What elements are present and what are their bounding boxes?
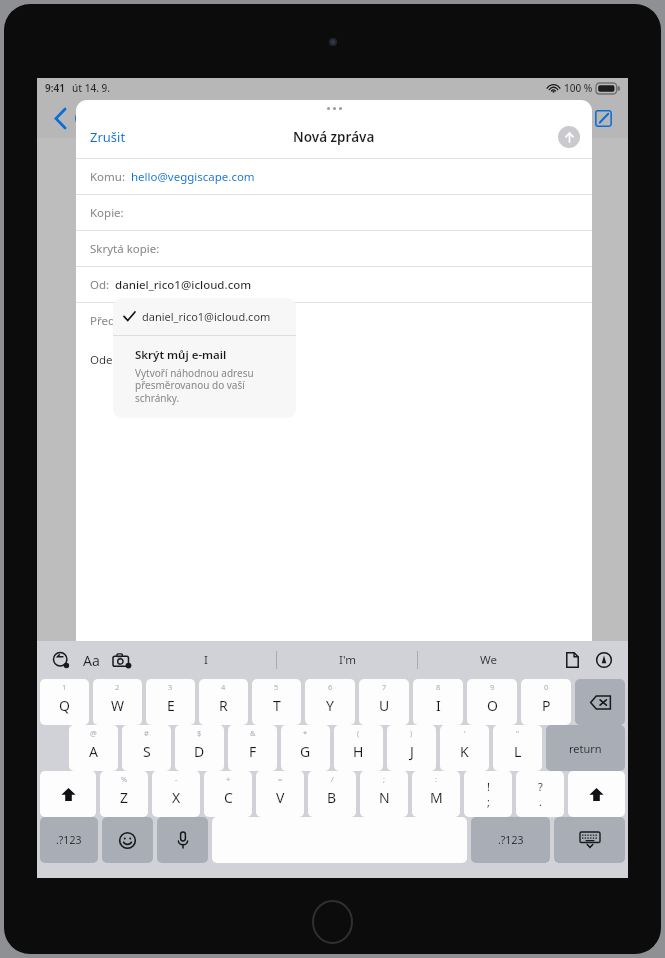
- button[interactable]: Dictation: [157, 817, 208, 863]
- button[interactable]: Komu:: [76, 159, 592, 194]
- button[interactable]: !: [464, 771, 512, 817]
- staticText: ': [464, 728, 466, 738]
- button[interactable]: #: [122, 725, 171, 771]
- staticText: ;: [383, 774, 386, 784]
- button[interactable]: Attach document: [559, 647, 585, 673]
- staticText: 1: [62, 682, 67, 692]
- button[interactable]: Hide keyboard: [554, 817, 625, 863]
- staticText: @: [90, 728, 97, 738]
- button[interactable]: @: [69, 725, 118, 771]
- button[interactable]: Move to folder: [546, 103, 576, 133]
- button[interactable]: 1: [40, 679, 89, 725]
- staticText: ): [410, 728, 413, 738]
- button[interactable]: ': [440, 725, 489, 771]
- staticText: 100 %: [564, 81, 593, 95]
- button[interactable]: /: [308, 771, 356, 817]
- button[interactable]: 4: [199, 679, 248, 725]
- button[interactable]: daniel_rico1@icloud.com: [113, 298, 296, 335]
- button[interactable]: Shift: [568, 771, 625, 817]
- button[interactable]: ): [387, 725, 436, 771]
- staticText: Od:: [90, 277, 110, 293]
- button[interactable]: Od:: [76, 267, 592, 302]
- button[interactable]: I: [135, 641, 277, 679]
- button[interactable]: Zrušit: [84, 124, 132, 150]
- staticText: .: [539, 794, 542, 809]
- button[interactable]: Shift: [40, 771, 96, 817]
- staticText: Zrušit: [90, 128, 126, 146]
- button[interactable]: Markup: [591, 647, 617, 673]
- button[interactable]: Skrýt můj e-mail: [113, 336, 296, 418]
- staticText: 6: [328, 682, 333, 692]
- staticText: Aa: [83, 651, 100, 670]
- staticText: 5: [274, 682, 279, 692]
- staticText: X: [172, 788, 181, 807]
- staticText: M: [430, 788, 443, 807]
- button[interactable]: ": [493, 725, 542, 771]
- button[interactable]: .?123: [40, 817, 98, 863]
- button[interactable]: Send: [558, 126, 580, 148]
- button[interactable]: 0: [521, 679, 571, 725]
- button[interactable]: 6: [305, 679, 355, 725]
- button[interactable]: :: [412, 771, 460, 817]
- button[interactable]: Camera: [109, 647, 135, 673]
- staticText: W: [111, 696, 125, 715]
- button[interactable]: &: [228, 725, 277, 771]
- staticText: We: [480, 652, 497, 668]
- button[interactable]: Backspace: [575, 679, 625, 725]
- button[interactable]: Kopie:: [76, 195, 592, 230]
- button[interactable]: 7: [359, 679, 409, 725]
- button[interactable]: 2: [93, 679, 142, 725]
- staticText: D: [194, 742, 205, 761]
- button[interactable]: 5: [252, 679, 301, 725]
- button[interactable]: (: [334, 725, 383, 771]
- button[interactable]: 8: [413, 679, 463, 725]
- button[interactable]: Předmět:: [76, 303, 592, 338]
- staticText: Odesláno z iPadu: [90, 352, 184, 368]
- staticText: daniel_rico1@icloud.com: [142, 309, 271, 324]
- staticText: C: [224, 788, 233, 807]
- button[interactable]: $: [175, 725, 224, 771]
- staticText: 7: [382, 682, 387, 692]
- staticText: I'm: [339, 652, 356, 668]
- button[interactable]: I'm: [277, 641, 418, 679]
- staticText: G: [300, 742, 311, 761]
- button[interactable]: 9: [467, 679, 517, 725]
- button[interactable]: Compose: [588, 103, 618, 133]
- button[interactable]: Aa: [80, 648, 103, 673]
- staticText: S: [143, 742, 151, 761]
- staticText: R: [219, 696, 228, 715]
- button[interactable]: %: [100, 771, 148, 817]
- staticText: A: [89, 742, 98, 761]
- button[interactable]: .?123: [471, 817, 550, 863]
- staticText: *: [303, 728, 308, 738]
- staticText: Skrytá kopie:: [90, 241, 160, 257]
- button[interactable]: return: [546, 725, 625, 771]
- button[interactable]: =: [256, 771, 304, 817]
- button[interactable]: Undo: [48, 647, 74, 673]
- button[interactable]: -: [152, 771, 200, 817]
- button[interactable]: Emoji: [102, 817, 153, 863]
- staticText: ": [516, 728, 520, 738]
- staticText: (: [357, 728, 360, 738]
- staticText: &: [250, 728, 256, 738]
- button[interactable]: +: [204, 771, 252, 817]
- staticText: return: [569, 741, 602, 756]
- staticText: :: [435, 774, 438, 784]
- button[interactable]: Skrytá kopie:: [76, 231, 592, 266]
- button[interactable]: We: [418, 641, 559, 679]
- staticText: Skrýt můj e-mail: [135, 347, 227, 363]
- staticText: $: [197, 728, 202, 738]
- button[interactable]: ;: [360, 771, 408, 817]
- button[interactable]: Back: [47, 105, 73, 131]
- staticText: Kopie:: [90, 205, 124, 221]
- button[interactable]: ?: [516, 771, 564, 817]
- staticText: 4: [221, 682, 226, 692]
- button[interactable]: *: [281, 725, 330, 771]
- staticText: F: [249, 742, 257, 761]
- staticText: I: [436, 696, 441, 715]
- staticText: =: [278, 774, 283, 784]
- button[interactable]: 3: [146, 679, 195, 725]
- staticText: 9: [490, 682, 495, 692]
